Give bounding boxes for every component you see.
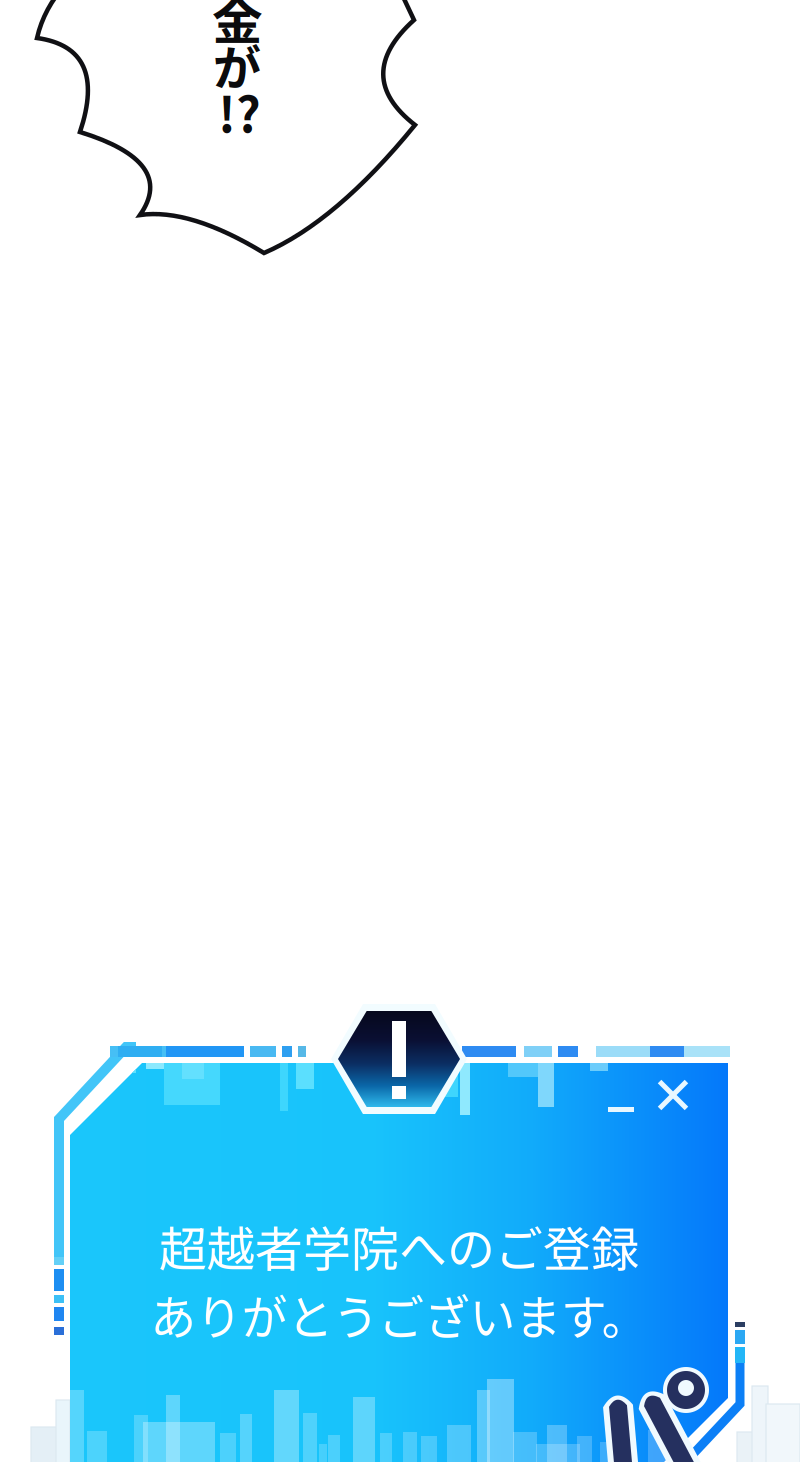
staticText: 金 <box>212 0 263 54</box>
staticText: が <box>213 30 261 99</box>
staticText: 超越者学院へのご登録 <box>159 1211 639 1280</box>
staticText: !? <box>218 77 261 146</box>
staticText: ありがとうございます。 <box>137 1279 660 1349</box>
button[interactable]: Close <box>654 1077 692 1113</box>
button[interactable]: Minimize <box>606 1078 636 1112</box>
